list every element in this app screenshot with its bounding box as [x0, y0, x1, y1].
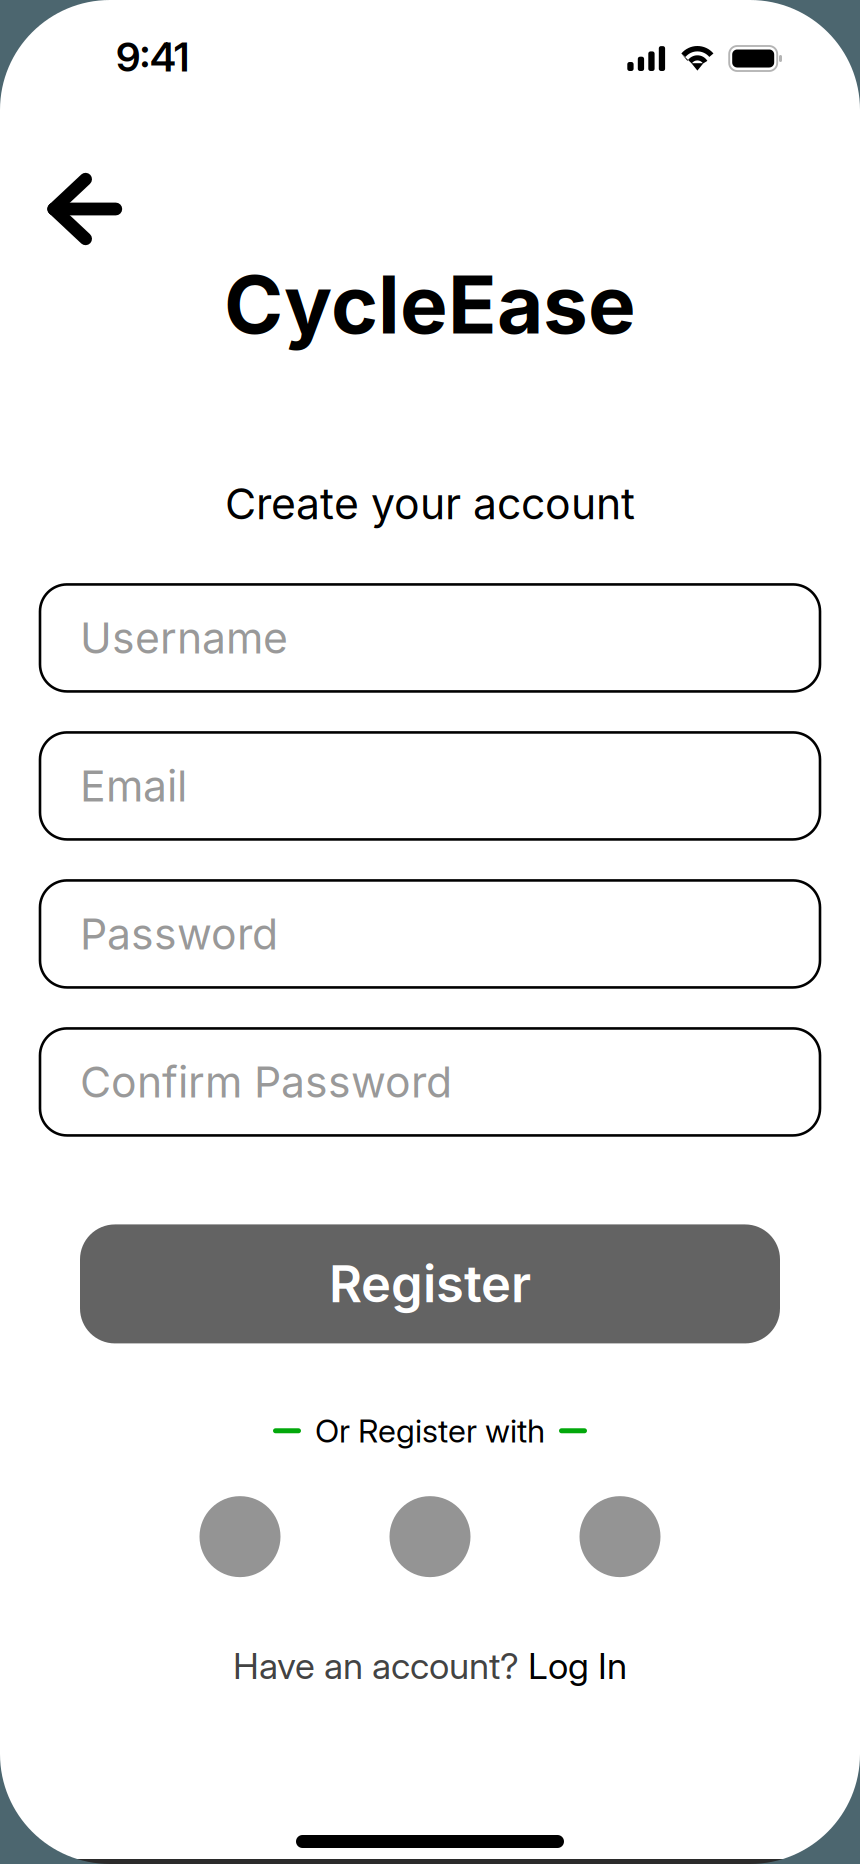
staticText: Create your account [225, 478, 635, 529]
button[interactable]: Sign up with Apple [389, 1496, 470, 1577]
button[interactable]: Sign up with Facebook [579, 1496, 660, 1577]
button[interactable]: Register [80, 1224, 780, 1343]
button[interactable]: Confirm Password [40, 1028, 820, 1135]
button[interactable]: Email [40, 732, 820, 839]
button[interactable]: Username [40, 584, 820, 691]
staticText: Log In [528, 1644, 627, 1688]
staticText: Register [329, 1253, 531, 1315]
staticText: Confirm Password [80, 1056, 452, 1108]
staticText: Username [80, 612, 288, 664]
button[interactable]: Password [40, 880, 820, 987]
staticText: Have an account? [233, 1644, 528, 1688]
staticText: CycleEase [224, 256, 636, 353]
button[interactable]: Sign up with Google [199, 1496, 280, 1577]
staticText: Or Register with [315, 1411, 545, 1450]
staticText: 9:41 [116, 33, 189, 81]
button[interactable]: Back [25, 151, 145, 256]
button[interactable]: Have an account? [233, 1644, 627, 1688]
staticText: Password [80, 908, 278, 960]
staticText: Email [80, 760, 187, 812]
